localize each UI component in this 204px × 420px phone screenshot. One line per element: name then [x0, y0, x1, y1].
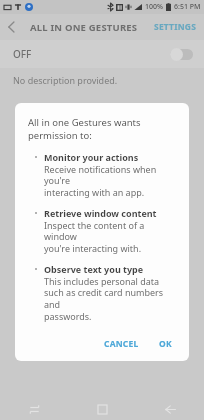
button[interactable]: SETTINGS	[147, 16, 204, 38]
staticText: Retrieve window content	[44, 207, 157, 219]
staticText: Monitor your actions	[44, 151, 139, 163]
button[interactable]: OFF	[0, 40, 204, 68]
staticText: This includes personal data such as cred…	[44, 275, 178, 323]
staticText: CANCEL	[104, 338, 139, 350]
button[interactable]: OK	[153, 333, 178, 355]
button[interactable]: CANCEL	[98, 333, 145, 355]
staticText: No description provided.	[13, 74, 118, 86]
staticText: Inspect the content of a window you're i…	[44, 219, 178, 255]
staticText: SETTINGS	[154, 21, 197, 33]
staticText: ALL IN ONE GESTURES	[30, 21, 138, 34]
staticText: 6:51 PM	[174, 2, 201, 12]
staticText: 100%	[145, 2, 163, 12]
staticText: All in one Gestures wants permission to:	[28, 116, 141, 142]
button[interactable]: Navigate up	[0, 14, 22, 40]
staticText: Observe text you type	[44, 263, 144, 275]
button[interactable]: Home	[68, 398, 136, 420]
staticText: OK	[159, 338, 172, 350]
staticText: OFF	[13, 47, 32, 61]
staticText: Receive notifications when you're intera…	[44, 163, 178, 199]
